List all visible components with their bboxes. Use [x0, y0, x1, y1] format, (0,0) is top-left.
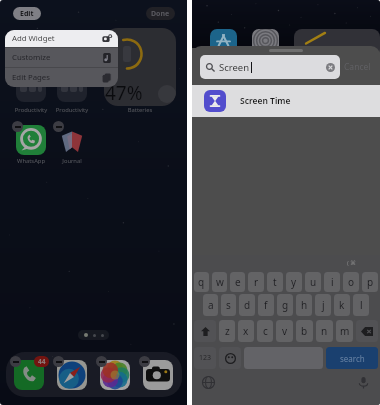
button[interactable]: m — [336, 320, 353, 342]
staticText: j — [322, 298, 325, 312]
staticText: 47% — [105, 80, 143, 106]
other: Clear text — [326, 63, 335, 72]
staticText: Add Widget — [12, 33, 55, 44]
button[interactable]: w — [212, 272, 227, 292]
button[interactable]: Photos — [100, 360, 130, 390]
button[interactable]: Dictate — [357, 376, 370, 389]
button[interactable]: b — [296, 320, 313, 342]
staticText: k — [339, 298, 345, 312]
staticText: t — [273, 275, 277, 289]
button[interactable]: Remove — [53, 121, 64, 132]
button[interactable]: z — [219, 320, 235, 342]
button[interactable]: f — [258, 294, 274, 316]
staticText: p — [367, 275, 374, 289]
button[interactable]: p — [362, 272, 378, 292]
button[interactable]: App Store — [210, 29, 237, 56]
button[interactable]: u — [305, 272, 321, 292]
staticText: w — [216, 275, 224, 289]
button[interactable]: d — [239, 294, 255, 316]
button[interactable]: 123 — [194, 347, 216, 369]
button[interactable]: e — [230, 272, 245, 292]
staticText: Cancel — [344, 61, 371, 73]
button[interactable]: Remove — [53, 356, 64, 367]
staticText: x — [243, 324, 249, 338]
button[interactable]: Widget — [294, 29, 380, 57]
button[interactable]: Safari — [57, 360, 87, 390]
button[interactable]: Page indicator, page 1 of 3 — [78, 330, 109, 340]
staticText: Edit Pages — [12, 72, 51, 83]
staticText: Done — [151, 9, 170, 19]
staticText: Screen — [219, 61, 250, 74]
button[interactable]: Remove — [12, 121, 23, 132]
button[interactable]: q — [194, 272, 209, 292]
staticText: search — [340, 353, 365, 364]
button[interactable]: Settings — [252, 29, 279, 56]
staticText: m — [340, 324, 350, 338]
staticText: Productivity — [9, 106, 53, 114]
staticText: u — [310, 275, 317, 289]
button[interactable]: Camera — [143, 360, 173, 390]
button[interactable]: Productivity folder — [57, 72, 87, 102]
button[interactable]: s — [221, 294, 236, 316]
button[interactable]: c — [257, 320, 273, 342]
staticText: Customize — [12, 52, 51, 63]
button[interactable]: g — [277, 294, 293, 316]
button[interactable]: search — [326, 347, 378, 369]
button[interactable]: j — [315, 294, 331, 316]
staticText: o — [348, 275, 355, 289]
staticText: ( ⌘ — [347, 259, 357, 267]
button[interactable]: Remove — [96, 356, 107, 367]
button[interactable]: r — [248, 272, 264, 292]
button[interactable]: h — [296, 294, 312, 316]
button[interactable]: Screen — [200, 55, 340, 79]
staticText: b — [301, 324, 308, 338]
staticText: n — [321, 324, 328, 338]
button[interactable]: WhatsApp — [16, 125, 46, 155]
staticText: 123 — [199, 353, 212, 363]
button[interactable]: Customize — [5, 48, 118, 67]
button[interactable]: o — [343, 272, 359, 292]
staticText: f — [264, 298, 268, 312]
button[interactable]: Emoji — [219, 347, 241, 369]
button[interactable]: Edit — [13, 7, 41, 20]
button[interactable]: Done — [146, 7, 175, 20]
button[interactable]: x — [238, 320, 254, 342]
button[interactable]: Add Widget — [5, 30, 118, 47]
button[interactable]: Productivity folder — [16, 72, 46, 102]
staticText: l — [360, 298, 363, 312]
staticText: Screen Time — [240, 95, 291, 107]
button[interactable]: i — [324, 272, 340, 292]
staticText: s — [226, 298, 231, 312]
button[interactable]: Phone, 44 missed calls — [14, 360, 44, 390]
staticText: d — [244, 298, 251, 312]
staticText: Batteries — [118, 106, 162, 114]
staticText: i — [331, 275, 334, 289]
button[interactable]: Backspace — [356, 320, 378, 342]
staticText: h — [301, 298, 308, 312]
button[interactable]: Batteries widget, 47 percent — [104, 28, 176, 106]
button[interactable]: Remove — [10, 356, 21, 367]
button[interactable]: Screen Time — [192, 85, 380, 117]
button[interactable]: Switch keyboard — [202, 376, 215, 389]
staticText: e — [235, 275, 241, 289]
button[interactable]: a — [203, 294, 218, 316]
staticText: q — [198, 275, 205, 289]
button[interactable]: n — [316, 320, 333, 342]
button[interactable]: Remove — [139, 356, 150, 367]
button[interactable]: Journal — [57, 125, 87, 155]
button[interactable]: l — [353, 294, 369, 316]
button[interactable]: Shift — [194, 320, 216, 342]
staticText: c — [263, 324, 268, 338]
button[interactable]: y — [286, 272, 302, 292]
button[interactable]: Edit Pages — [5, 68, 118, 87]
button[interactable]: t — [267, 272, 283, 292]
staticText: Productivity — [50, 106, 94, 114]
staticText: z — [225, 324, 230, 338]
staticText: v — [282, 324, 288, 338]
button[interactable]: v — [276, 320, 293, 342]
button[interactable]: k — [334, 294, 350, 316]
staticText: 44 — [38, 357, 46, 366]
staticText: a — [208, 298, 214, 312]
button[interactable]: Cancel — [340, 56, 372, 78]
